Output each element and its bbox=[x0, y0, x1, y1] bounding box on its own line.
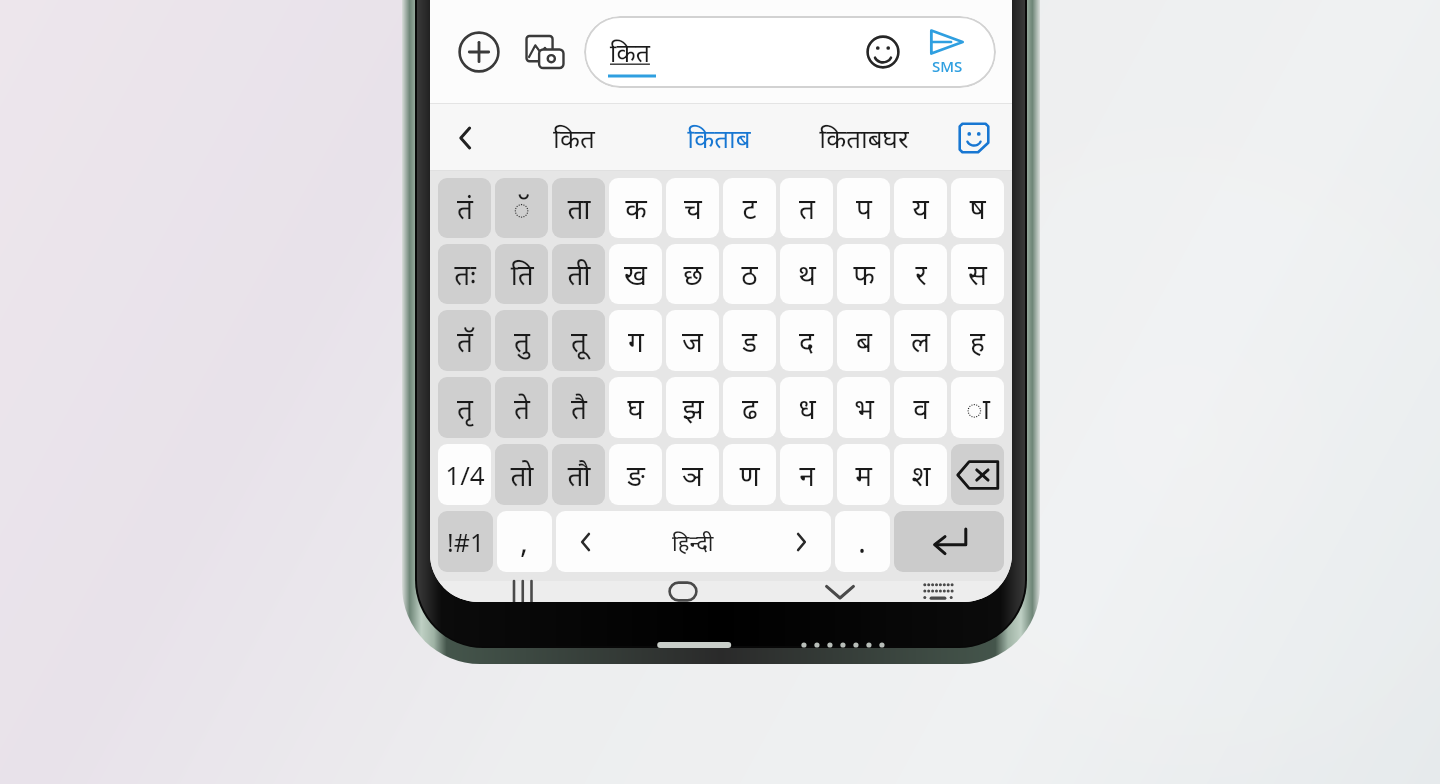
button[interactable]: ख bbox=[609, 244, 662, 304]
button[interactable]: Backspace bbox=[951, 444, 1004, 505]
staticText: भ bbox=[854, 389, 874, 427]
button[interactable]: ल bbox=[894, 310, 947, 371]
staticText: ध bbox=[798, 389, 816, 427]
staticText: प bbox=[856, 189, 872, 227]
staticText: हिन्दी bbox=[672, 527, 714, 557]
staticText: ज bbox=[682, 322, 703, 360]
button[interactable]: ढ bbox=[723, 377, 776, 438]
button[interactable]: 1/4 bbox=[438, 444, 491, 505]
staticText: ह bbox=[970, 322, 985, 360]
button[interactable]: ॅ bbox=[495, 178, 548, 238]
button[interactable]: ण bbox=[723, 444, 776, 505]
button[interactable]: ता bbox=[552, 178, 605, 238]
button[interactable]: तं bbox=[438, 178, 491, 238]
staticText: तं bbox=[457, 189, 473, 227]
button[interactable]: व bbox=[894, 377, 947, 438]
button[interactable]: म bbox=[837, 444, 890, 505]
button[interactable]: र bbox=[894, 244, 947, 304]
staticText: ती bbox=[567, 255, 591, 293]
button[interactable]: तू bbox=[552, 310, 605, 371]
button[interactable]: थ bbox=[780, 244, 833, 304]
button[interactable]: Switch keyboard bbox=[898, 581, 978, 602]
button[interactable]: ञ bbox=[666, 444, 719, 505]
button[interactable]: किताब bbox=[646, 104, 791, 171]
staticText: ट bbox=[742, 189, 757, 227]
button[interactable]: ति bbox=[495, 244, 548, 304]
button[interactable]: तौ bbox=[552, 444, 605, 505]
button[interactable]: ती bbox=[552, 244, 605, 304]
button[interactable]: Enter bbox=[894, 511, 1004, 572]
staticText: ल bbox=[911, 322, 930, 360]
button[interactable]: Add attachment bbox=[450, 23, 508, 81]
button[interactable]: कित bbox=[502, 104, 646, 171]
button[interactable]: हिन्दी bbox=[556, 511, 831, 572]
button[interactable]: फ bbox=[837, 244, 890, 304]
button[interactable]: , bbox=[497, 511, 552, 572]
button[interactable]: ङ bbox=[609, 444, 662, 505]
button[interactable]: झ bbox=[666, 377, 719, 438]
button[interactable]: Send SMS bbox=[916, 16, 978, 88]
staticText: र bbox=[915, 255, 927, 293]
button[interactable]: तॅ bbox=[438, 310, 491, 371]
staticText: किताब bbox=[687, 120, 751, 155]
button[interactable]: ज bbox=[666, 310, 719, 371]
button[interactable]: श bbox=[894, 444, 947, 505]
button[interactable]: क bbox=[609, 178, 662, 238]
staticText: ता bbox=[567, 189, 591, 227]
button[interactable]: कित bbox=[584, 16, 996, 88]
staticText: च bbox=[684, 189, 702, 227]
staticText: ड bbox=[742, 322, 757, 360]
button[interactable]: ष bbox=[951, 178, 1004, 238]
button[interactable]: ध bbox=[780, 377, 833, 438]
staticText: छ bbox=[683, 255, 703, 293]
button[interactable]: स bbox=[951, 244, 1004, 304]
button[interactable]: ब bbox=[837, 310, 890, 371]
button[interactable]: न bbox=[780, 444, 833, 505]
button[interactable]: Previous suggestions bbox=[430, 104, 502, 171]
button[interactable]: किताबघर bbox=[791, 104, 936, 171]
button[interactable]: Stickers bbox=[936, 104, 1012, 171]
staticText: , bbox=[520, 521, 529, 562]
staticText: कित bbox=[553, 120, 595, 155]
staticText: ञ bbox=[682, 456, 703, 494]
staticText: ष bbox=[969, 189, 986, 227]
button[interactable]: प bbox=[837, 178, 890, 238]
button[interactable]: !#1 bbox=[438, 511, 493, 572]
staticText: किताबघर bbox=[819, 120, 909, 155]
button[interactable]: ह bbox=[951, 310, 1004, 371]
button[interactable]: तै bbox=[552, 377, 605, 438]
button[interactable]: Emoji bbox=[858, 27, 908, 77]
button[interactable]: ग bbox=[609, 310, 662, 371]
staticText: तो bbox=[510, 456, 534, 494]
button[interactable]: ा bbox=[951, 377, 1004, 438]
button[interactable]: भ bbox=[837, 377, 890, 438]
staticText: . bbox=[858, 521, 867, 562]
button[interactable]: Gallery and camera bbox=[516, 23, 574, 81]
button[interactable]: छ bbox=[666, 244, 719, 304]
button[interactable]: च bbox=[666, 178, 719, 238]
staticText: ा bbox=[966, 389, 990, 427]
staticText: तॅ bbox=[457, 322, 473, 360]
button[interactable]: Home bbox=[643, 581, 723, 602]
staticText: म bbox=[855, 456, 872, 494]
staticText: !#1 bbox=[447, 525, 485, 559]
button[interactable]: तृ bbox=[438, 377, 491, 438]
button[interactable]: तः bbox=[438, 244, 491, 304]
button[interactable]: य bbox=[894, 178, 947, 238]
staticText: कित bbox=[610, 35, 650, 69]
button[interactable]: . bbox=[835, 511, 890, 572]
button[interactable]: ड bbox=[723, 310, 776, 371]
button[interactable]: Hide keyboard bbox=[800, 581, 880, 602]
button[interactable]: द bbox=[780, 310, 833, 371]
button[interactable]: ठ bbox=[723, 244, 776, 304]
button[interactable]: Recents bbox=[486, 581, 566, 602]
button[interactable]: ट bbox=[723, 178, 776, 238]
staticText: SMS bbox=[932, 56, 963, 76]
button[interactable]: ते bbox=[495, 377, 548, 438]
button[interactable]: तो bbox=[495, 444, 548, 505]
button[interactable]: तु bbox=[495, 310, 548, 371]
button[interactable]: घ bbox=[609, 377, 662, 438]
staticText: तौ bbox=[567, 456, 591, 494]
staticText: ढ bbox=[742, 389, 758, 427]
button[interactable]: त bbox=[780, 178, 833, 238]
